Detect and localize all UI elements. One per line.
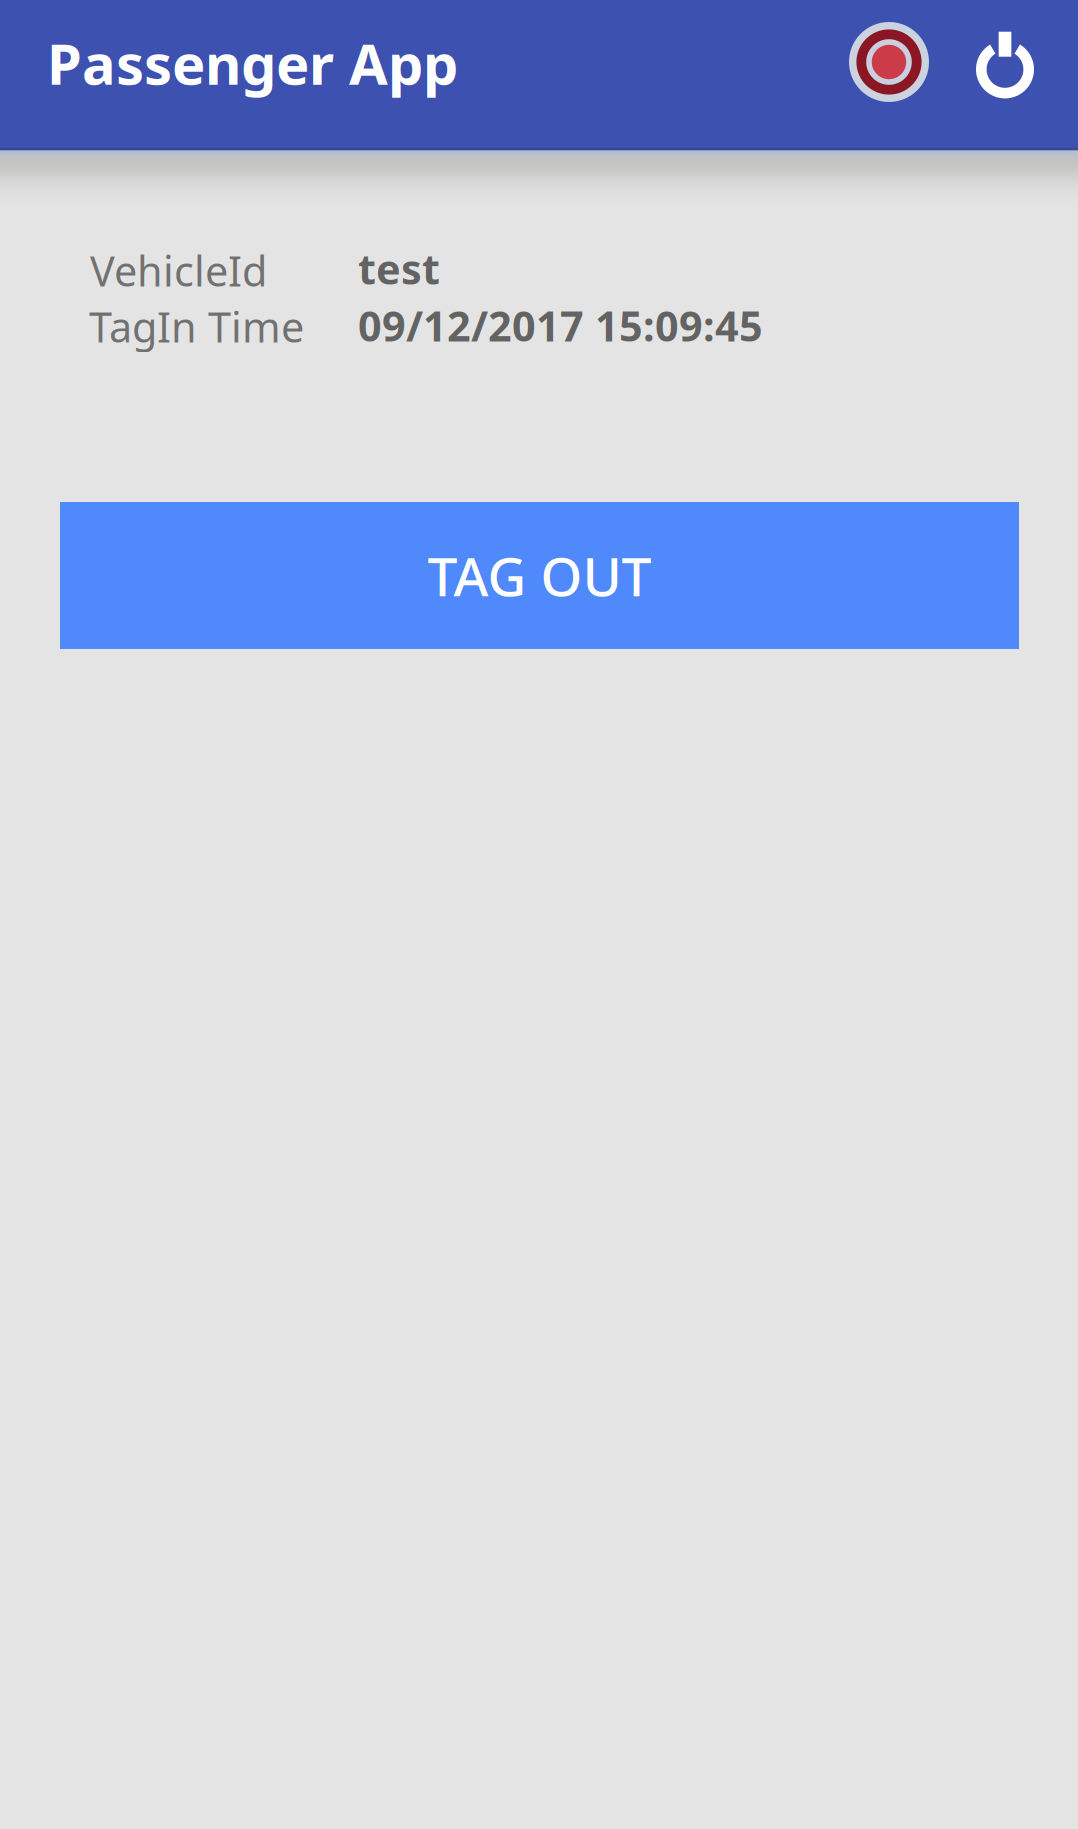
staticText: 09/12/2017 15:09:45	[358, 298, 763, 353]
button[interactable]: Tag in	[834, 0, 944, 124]
staticText: Passenger App	[47, 26, 458, 100]
staticText: TAG OUT	[427, 540, 651, 611]
staticText: VehicleId	[90, 243, 267, 298]
staticText: test	[358, 241, 440, 296]
button[interactable]: TAG OUT	[60, 502, 1019, 649]
button[interactable]: Log out	[952, 0, 1062, 148]
staticText: TagIn Time	[89, 299, 304, 354]
